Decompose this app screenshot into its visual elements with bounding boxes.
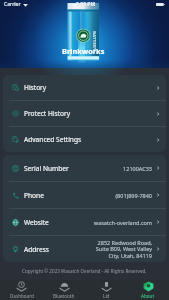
staticText: Protect History <box>24 109 71 118</box>
button[interactable]: Lid <box>85 280 127 300</box>
button[interactable]: Dashboard <box>0 280 43 300</box>
staticText: Carrier <box>4 1 21 8</box>
staticText: 2852 Redwood Road, Suite B09, West Valle… <box>95 239 152 260</box>
button[interactable]: Phone <box>3 182 166 208</box>
staticText: (801)899-7840 <box>115 192 152 199</box>
button[interactable]: Protect History <box>3 101 166 126</box>
staticText: Serial Number <box>24 164 69 173</box>
staticText: 12100AC33 <box>123 165 152 172</box>
button[interactable]: Advanced Settings <box>3 127 166 152</box>
staticText: Address <box>24 245 49 254</box>
staticText: wasatch-overland.com <box>93 219 152 226</box>
button[interactable]: Website <box>3 209 166 235</box>
button[interactable]: Bluetooth <box>43 280 85 300</box>
staticText: BATTERY <box>91 21 97 61</box>
button[interactable]: History <box>3 75 166 100</box>
staticText: Advanced Settings <box>24 135 82 144</box>
staticText: Website <box>24 218 49 227</box>
staticText: Brinkworks <box>62 46 105 56</box>
staticText: History <box>24 83 47 92</box>
staticText: About <box>141 293 155 299</box>
staticText: Copyright © 2023 Wasatch Overland - All … <box>22 268 147 274</box>
staticText: Phone <box>24 191 44 200</box>
staticText: Lid <box>103 293 110 299</box>
staticText: Bluetooth <box>53 293 75 299</box>
button[interactable]: About <box>127 280 169 300</box>
staticText: Dashboard <box>10 293 34 299</box>
button[interactable]: Serial Number <box>3 155 166 181</box>
staticText: 5:38 PM <box>76 1 96 8</box>
button[interactable]: Address <box>3 236 166 262</box>
